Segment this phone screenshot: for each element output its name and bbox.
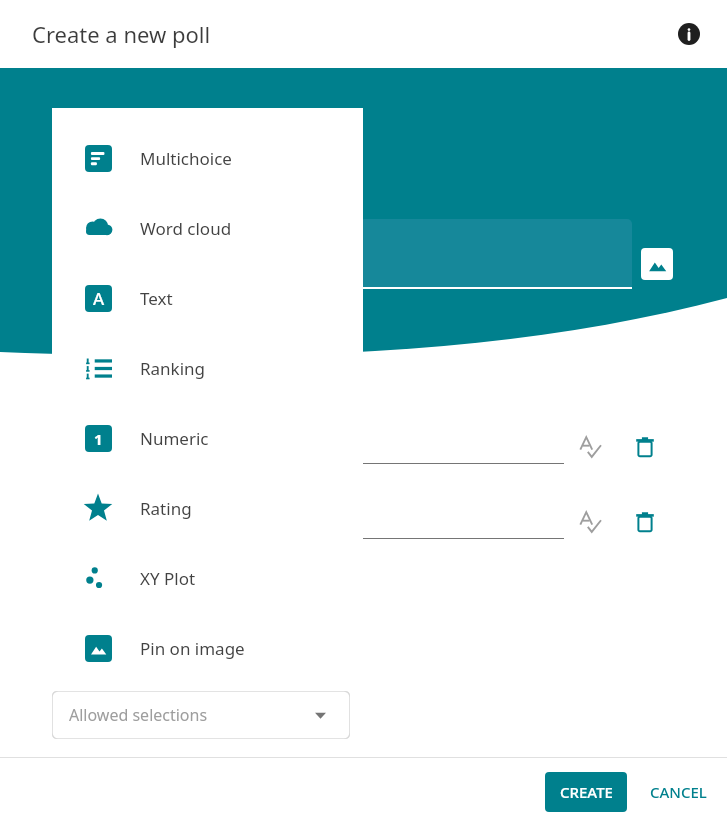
button[interactable]: Word cloud [52,193,363,263]
button[interactable]: Spellcheck [572,504,608,540]
button[interactable]: Multichoice [52,123,363,193]
button[interactable]: CREATE [545,772,627,812]
button[interactable]: Ranking [52,333,363,403]
staticText: XY Plot [140,567,196,590]
staticText: Ranking [140,357,206,380]
button[interactable]: Delete [627,504,663,540]
staticText: Pin on image [140,637,245,660]
button[interactable]: A [52,263,363,333]
button[interactable]: CANCEL [639,772,717,812]
staticText: A [93,287,105,310]
button[interactable]: Delete [627,429,663,465]
staticText: CANCEL [650,782,707,802]
staticText: Create a new poll [32,19,211,49]
button[interactable]: Info [671,16,707,52]
staticText: 1 [94,429,103,449]
button[interactable]: Pin on image [52,613,363,683]
button[interactable]: Spellcheck [572,429,608,465]
staticText: CREATE [560,782,613,802]
staticText: Word cloud [140,217,232,240]
staticText: Multichoice [140,147,232,170]
button[interactable]: XY Plot [52,543,363,613]
staticText: Text [140,287,173,310]
staticText: Numeric [140,427,209,450]
button[interactable]: Add image [641,248,673,280]
button[interactable]: Allowed selections [52,691,350,739]
button[interactable]: Rating [52,473,363,543]
staticText: Allowed selections [69,704,208,726]
button[interactable]: 1 [52,403,363,473]
button[interactable] [360,219,632,287]
staticText: Rating [140,497,192,520]
